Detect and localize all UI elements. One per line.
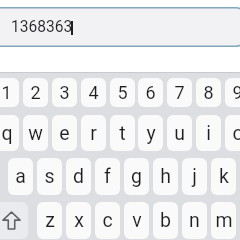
staticText: j <box>192 165 197 188</box>
staticText: f <box>104 165 111 188</box>
button[interactable]: 9 <box>225 78 240 107</box>
staticText: h <box>160 165 171 188</box>
staticText: z <box>45 209 55 232</box>
staticText: 5 <box>117 82 128 103</box>
button[interactable]: j <box>182 158 207 195</box>
staticText: v <box>132 209 142 232</box>
staticText: e <box>59 122 70 145</box>
staticText: k <box>219 165 229 188</box>
staticText: g <box>131 165 142 188</box>
staticText: 3 <box>59 82 70 103</box>
button[interactable]: u <box>167 115 192 151</box>
button[interactable]: s <box>37 158 62 195</box>
button[interactable]: 8 <box>196 78 221 107</box>
staticText: x <box>74 209 84 232</box>
staticText: 2 <box>30 82 41 103</box>
button[interactable]: b <box>153 202 178 239</box>
staticText: s <box>44 165 55 188</box>
staticText: 1368363 <box>11 18 73 36</box>
button[interactable]: 4 <box>81 78 106 107</box>
staticText: d <box>73 165 84 188</box>
staticText: b <box>160 209 171 232</box>
button[interactable]: 7 <box>167 78 192 107</box>
button[interactable]: f <box>95 158 120 195</box>
button[interactable]: c <box>95 202 120 239</box>
button[interactable]: h <box>153 158 178 195</box>
staticText: r <box>90 122 97 145</box>
button[interactable]: o <box>225 115 240 151</box>
staticText: 1 <box>1 82 12 103</box>
staticText: i <box>206 122 211 145</box>
button[interactable] <box>0 7 240 47</box>
button[interactable]: r <box>81 115 106 151</box>
button[interactable]: v <box>124 202 149 239</box>
button[interactable]: 3 <box>52 78 77 107</box>
button[interactable]: n <box>182 202 207 239</box>
button[interactable]: 5 <box>110 78 135 107</box>
staticText: 7 <box>174 82 185 103</box>
staticText: 9 <box>232 82 240 103</box>
button[interactable]: g <box>124 158 149 195</box>
staticText: t <box>119 122 126 145</box>
button[interactable]: Shift <box>0 202 28 239</box>
button[interactable]: 2 <box>23 78 48 107</box>
button[interactable]: t <box>110 115 135 151</box>
staticText: u <box>174 122 185 145</box>
staticText: m <box>215 209 233 232</box>
button[interactable]: a <box>8 158 33 195</box>
staticText: c <box>102 209 113 232</box>
staticText: 4 <box>88 82 99 103</box>
staticText: w <box>28 122 43 145</box>
button[interactable]: y <box>138 115 163 151</box>
button[interactable]: w <box>23 115 48 151</box>
staticText: n <box>189 209 200 232</box>
staticText: 8 <box>203 82 214 103</box>
button[interactable]: z <box>37 202 62 239</box>
staticText: y <box>146 122 156 145</box>
staticText: q <box>1 122 13 145</box>
button[interactable]: 1 <box>0 78 19 107</box>
button[interactable]: q <box>0 115 19 151</box>
button[interactable]: x <box>66 202 91 239</box>
staticText: 6 <box>145 82 156 103</box>
button[interactable]: e <box>52 115 77 151</box>
button[interactable]: i <box>196 115 221 151</box>
button[interactable]: m <box>211 202 236 239</box>
button[interactable]: 6 <box>138 78 163 107</box>
button[interactable]: d <box>66 158 91 195</box>
staticText: o <box>232 122 240 145</box>
button[interactable]: k <box>211 158 236 195</box>
staticText: a <box>15 165 26 188</box>
